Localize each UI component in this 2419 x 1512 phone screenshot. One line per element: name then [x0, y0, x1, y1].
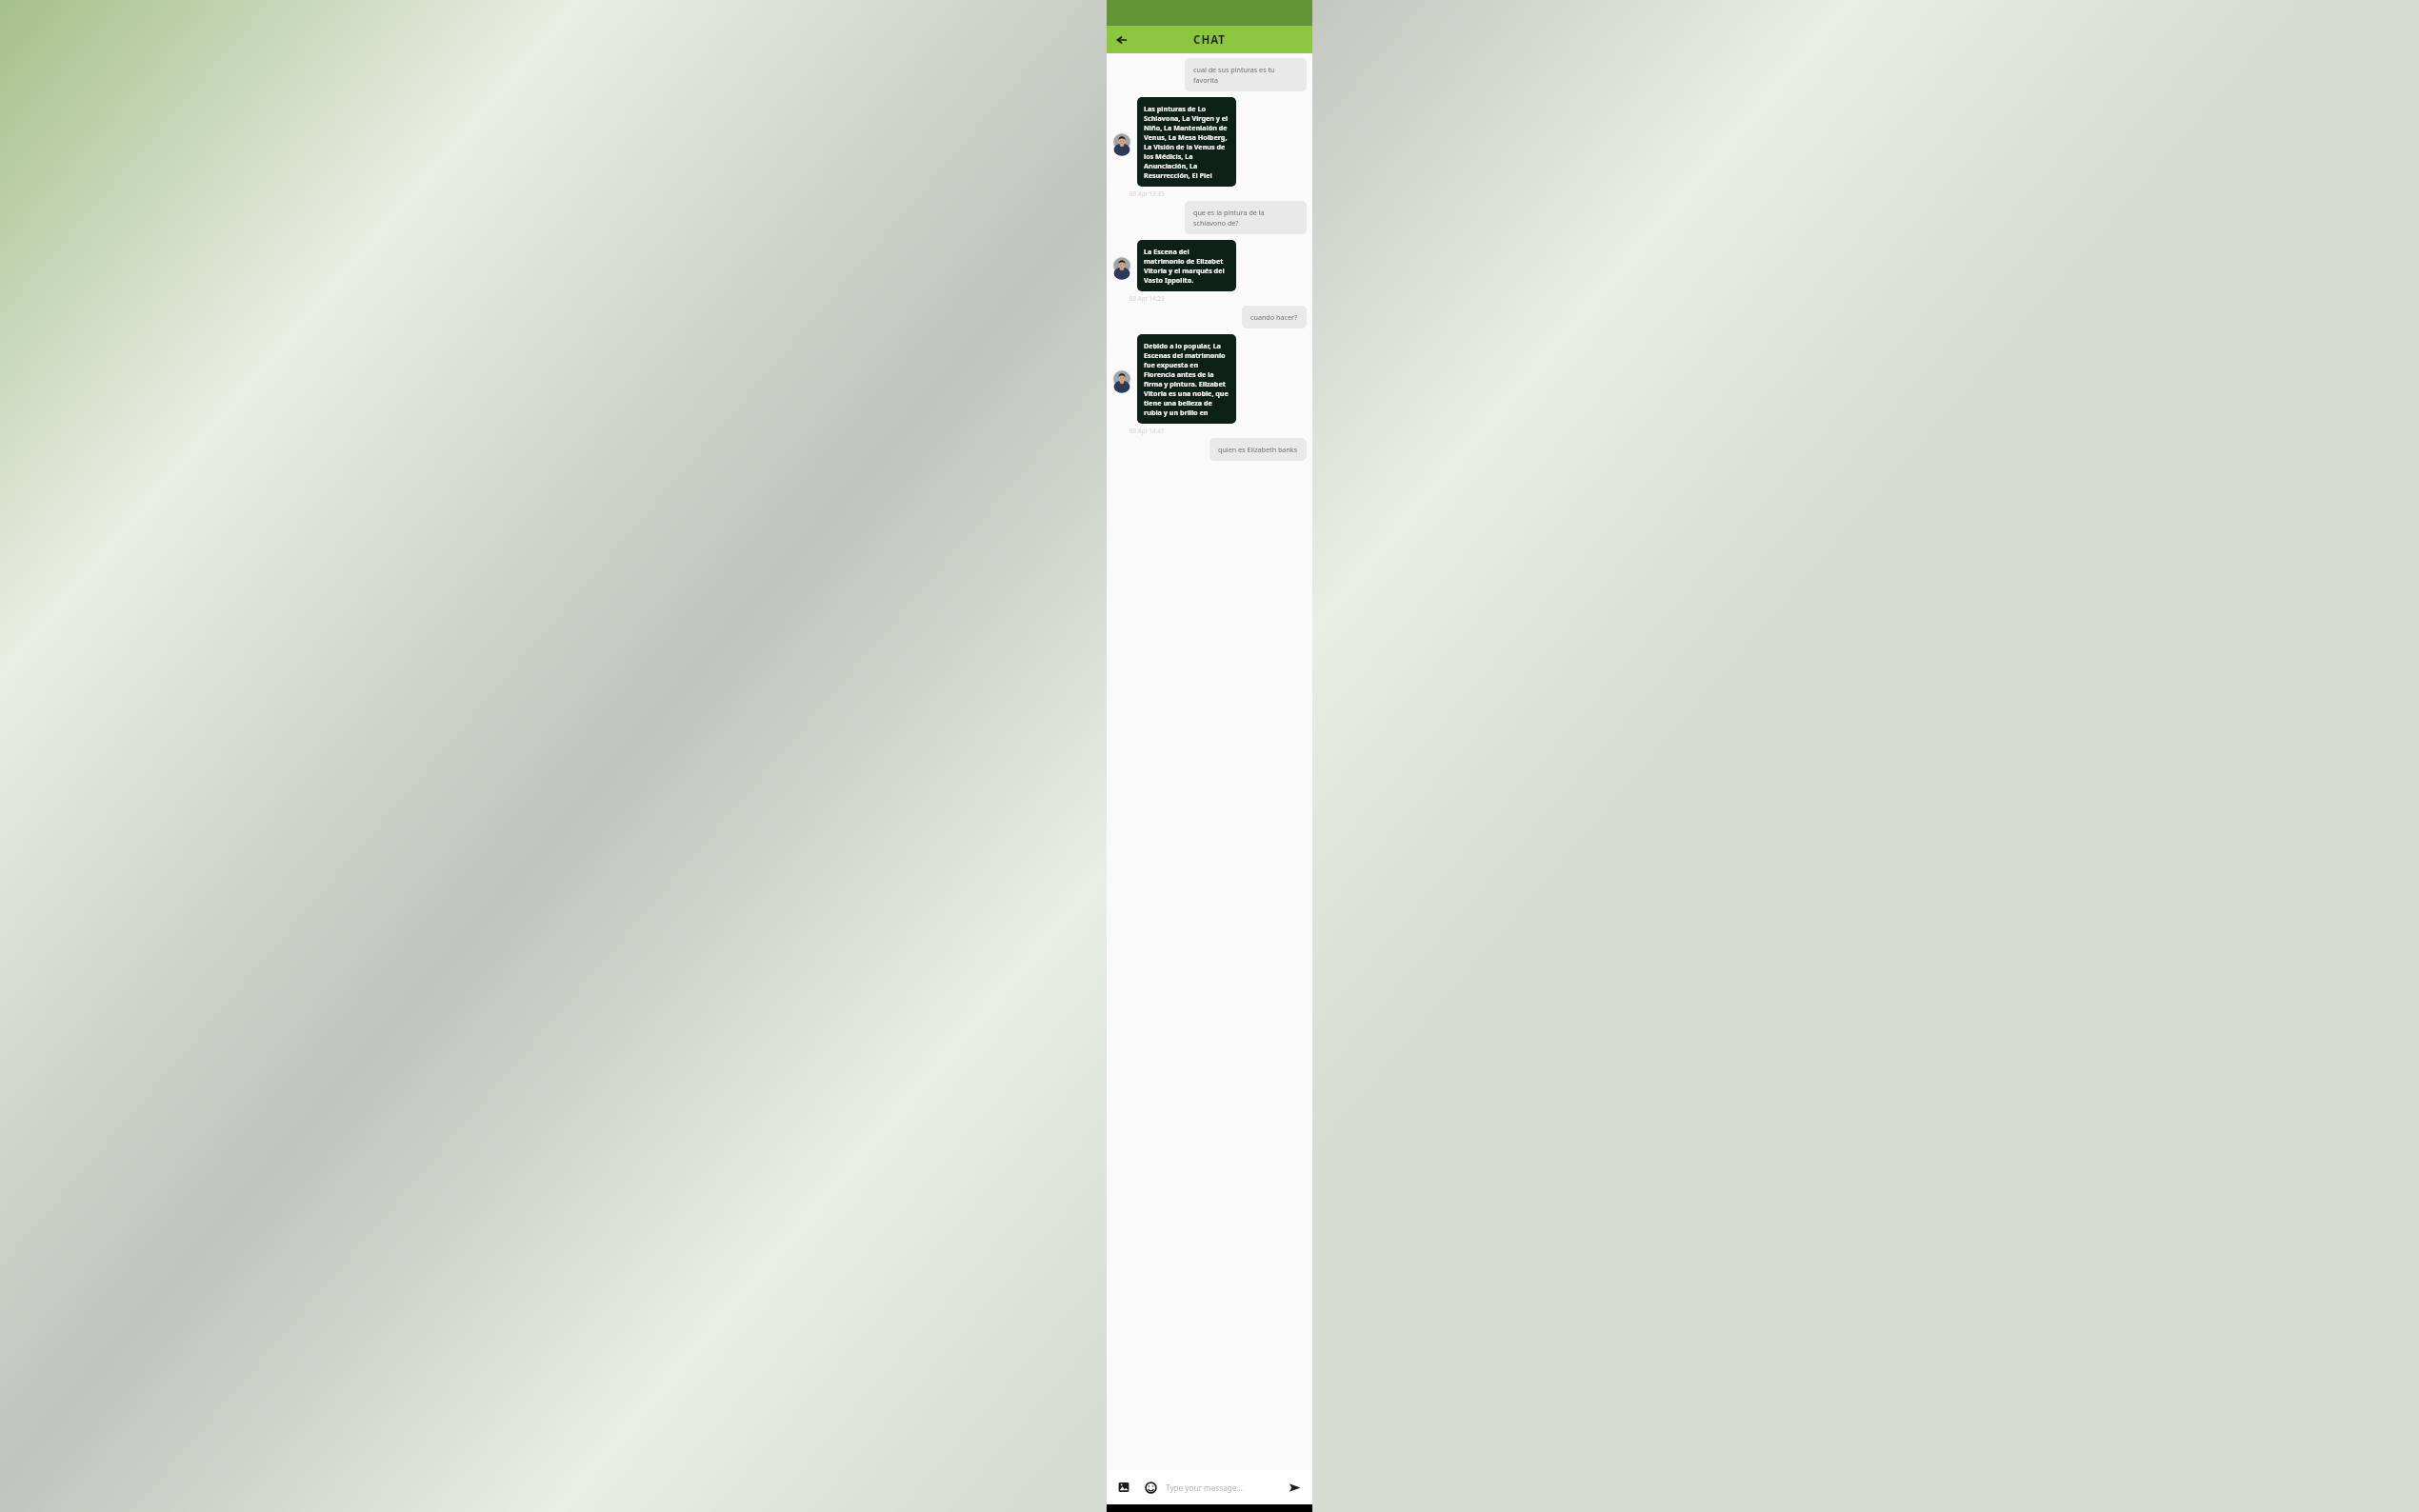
- staticText: 03 Apr 14:41: [1130, 427, 1165, 434]
- staticText: CHAT: [1193, 32, 1226, 48]
- staticText: La Escena del matrimonio de Elizabet Vit…: [1144, 247, 1229, 285]
- staticText: cual de sus pinturas es tu favorita: [1193, 65, 1298, 85]
- staticText: Type your message...: [1166, 1482, 1243, 1493]
- staticText: Las pinturas de Lo Schiavona, La Virgen …: [1144, 104, 1229, 180]
- staticText: 03 Apr 13:35: [1130, 189, 1165, 197]
- staticText: que es la pintura de la schiavono de?: [1193, 208, 1298, 228]
- button[interactable]: quien es Elizabeth banks: [1209, 438, 1307, 461]
- button[interactable]: Type your message...: [1166, 1470, 1283, 1504]
- staticText: quien es Elizabeth banks: [1218, 445, 1298, 454]
- staticText: 03 Apr 14:23: [1130, 294, 1165, 302]
- button[interactable]: Las pinturas de Lo Schiavona, La Virgen …: [1137, 97, 1236, 187]
- staticText: cuando hacer?: [1250, 312, 1298, 322]
- button[interactable]: cuando hacer?: [1242, 306, 1307, 328]
- button[interactable]: Emoji: [1140, 1477, 1161, 1498]
- button[interactable]: Send: [1283, 1476, 1306, 1499]
- button[interactable]: Attach image: [1113, 1477, 1134, 1498]
- button[interactable]: Debido a lo popular, La Escenas del matr…: [1137, 334, 1236, 424]
- button[interactable]: La Escena del matrimonio de Elizabet Vit…: [1137, 240, 1236, 291]
- staticText: Debido a lo popular, La Escenas del matr…: [1144, 341, 1229, 417]
- button[interactable]: Back: [1110, 28, 1134, 52]
- button[interactable]: que es la pintura de la schiavono de?: [1185, 201, 1307, 234]
- button[interactable]: cual de sus pinturas es tu favorita: [1185, 58, 1307, 91]
